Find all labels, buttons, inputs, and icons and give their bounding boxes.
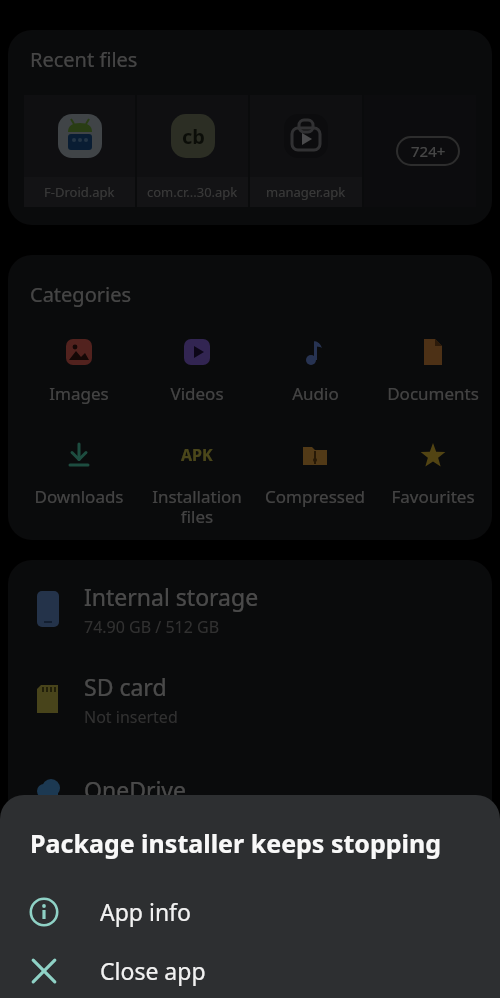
staticText: F-Droid.apk: [44, 183, 115, 201]
staticText: Documents: [387, 382, 479, 405]
button[interactable]: Documents: [374, 332, 492, 405]
button[interactable]: APK: [138, 435, 256, 528]
button[interactable]: OneDrive: [8, 744, 492, 834]
staticText: Recent files: [30, 46, 138, 73]
button[interactable]: Audio: [256, 332, 374, 405]
staticText: 74.90 GB / 512 GB: [84, 616, 220, 638]
staticText: manager.apk: [266, 183, 346, 201]
staticText: Compressed: [265, 485, 365, 508]
staticText: Not inserted: [84, 706, 178, 728]
button[interactable]: Compressed: [256, 435, 374, 508]
button[interactable]: manager.apk: [250, 95, 362, 207]
staticText: Images: [49, 382, 109, 405]
button[interactable]: App info: [0, 880, 500, 943]
staticText: cb: [182, 123, 205, 150]
button[interactable]: Internal storage: [8, 564, 492, 654]
button[interactable]: Videos: [138, 332, 256, 405]
staticText: Videos: [170, 382, 224, 405]
staticText: App info: [100, 896, 191, 927]
staticText: 724+: [411, 141, 446, 161]
button[interactable]: cb: [137, 95, 248, 207]
staticText: com.cr...30.apk: [147, 183, 238, 201]
button[interactable]: Images: [20, 332, 138, 405]
button[interactable]: Close app: [0, 943, 500, 998]
staticText: SD card: [84, 671, 167, 702]
button[interactable]: Downloads: [20, 435, 138, 508]
staticText: Downloads: [34, 485, 124, 508]
staticText: Close app: [100, 955, 206, 986]
button[interactable]: Favourites: [374, 435, 492, 508]
button[interactable]: F-Droid.apk: [24, 95, 135, 207]
staticText: Audio: [292, 382, 339, 405]
staticText: APK: [181, 444, 213, 466]
staticText: Package installer keeps stopping: [30, 826, 442, 860]
staticText: Installation files: [152, 485, 242, 528]
staticText: Categories: [30, 281, 132, 308]
staticText: Favourites: [391, 485, 475, 508]
staticText: OneDrive: [84, 774, 187, 805]
button[interactable]: SD card: [8, 654, 492, 744]
staticText: Internal storage: [84, 581, 259, 612]
button[interactable]: 724+: [364, 95, 476, 207]
